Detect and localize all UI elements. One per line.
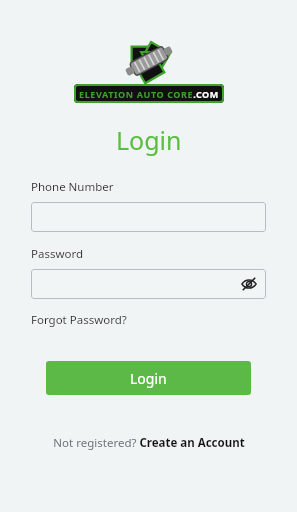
staticText: Login xyxy=(116,123,182,157)
staticText: Phone Number xyxy=(31,179,114,195)
button[interactable] xyxy=(31,202,266,232)
button[interactable]: Show password xyxy=(31,269,266,299)
staticText: ELEVATION AUTO CORE.COM xyxy=(79,88,219,100)
button[interactable]: Login xyxy=(46,361,251,395)
staticText: Forgot Password? xyxy=(31,312,127,328)
staticText: Not registered? Create an Account xyxy=(53,435,245,451)
button[interactable]: Show password xyxy=(238,273,260,295)
staticText: Password xyxy=(31,246,84,262)
button[interactable]: Not registered? Create an Account xyxy=(53,435,245,451)
button[interactable]: Forgot Password? xyxy=(31,312,127,328)
staticText: Login xyxy=(130,369,167,388)
